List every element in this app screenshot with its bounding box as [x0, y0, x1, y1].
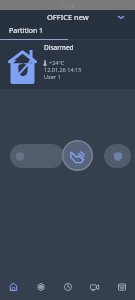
button[interactable]: Select object	[107, 10, 135, 24]
staticText: Disarmed	[44, 43, 74, 52]
staticText: User 1	[44, 73, 61, 80]
button[interactable]: Events	[108, 274, 135, 300]
button[interactable]: Home	[0, 274, 27, 300]
staticText: 12.01.26 14:15	[44, 66, 82, 73]
button[interactable]: Arm away	[10, 144, 64, 168]
staticText: Partition 1	[9, 26, 44, 36]
button[interactable]: Touch to control	[62, 140, 93, 171]
button[interactable]: Scenarios	[54, 274, 81, 300]
button[interactable]: Cameras	[81, 274, 108, 300]
button[interactable]: Disarmed	[0, 40, 135, 89]
button[interactable]: Arm stay	[104, 144, 131, 168]
staticText: 17:12	[60, 2, 75, 9]
staticText: OFFICE new	[47, 12, 89, 22]
staticText: +24°C	[49, 59, 65, 66]
button[interactable]: Settings	[27, 274, 54, 300]
button[interactable]	[67, 24, 135, 40]
button[interactable]: Partition 1	[0, 24, 67, 40]
